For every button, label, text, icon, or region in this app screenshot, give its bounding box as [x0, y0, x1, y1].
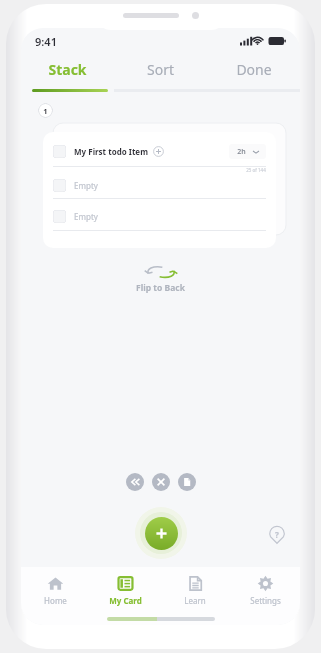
button[interactable]: Done — [207, 60, 300, 79]
button[interactable]: Settings — [230, 575, 300, 606]
staticText: 25 of 144 — [246, 167, 266, 173]
button[interactable]: Sort — [114, 60, 207, 79]
button[interactable]: Flip to Back — [21, 264, 300, 294]
button[interactable]: Stack — [21, 60, 114, 79]
button[interactable]: Previous — [126, 473, 144, 491]
button[interactable]: Toggle complete — [53, 210, 66, 223]
button[interactable]: My Card — [90, 575, 160, 606]
staticText: Empty — [74, 180, 98, 191]
staticText: Learn — [184, 595, 206, 606]
staticText: Home — [44, 595, 67, 606]
button[interactable]: 2h — [229, 144, 266, 159]
staticText: Flip to Back — [136, 282, 185, 294]
button[interactable]: Add sub task — [153, 146, 164, 157]
button[interactable]: Dismiss — [152, 473, 170, 491]
staticText: Empty — [74, 211, 98, 222]
staticText: Settings — [250, 595, 281, 606]
staticText: ? — [275, 529, 279, 540]
staticText: Sort — [147, 60, 174, 79]
button[interactable]: Toggle complete — [53, 208, 266, 224]
button[interactable]: Toggle complete — [53, 177, 266, 193]
staticText: 1 — [43, 106, 48, 116]
button[interactable]: Learn — [160, 575, 230, 606]
button[interactable]: Toggle complete — [43, 132, 276, 248]
staticText: Done — [236, 60, 272, 79]
staticText: Stack — [48, 60, 87, 79]
staticText: 2h — [237, 147, 246, 157]
button[interactable]: Toggle complete — [53, 145, 66, 158]
button[interactable]: Toggle complete — [53, 179, 66, 192]
button[interactable]: Add card — [135, 507, 187, 559]
staticText: My First todo Item — [74, 146, 148, 157]
staticText: My Card — [109, 595, 142, 606]
button[interactable]: Help — [268, 526, 286, 544]
staticText: 9:41 — [35, 34, 57, 49]
button[interactable]: Notes — [178, 473, 196, 491]
button[interactable]: Home — [21, 575, 90, 606]
